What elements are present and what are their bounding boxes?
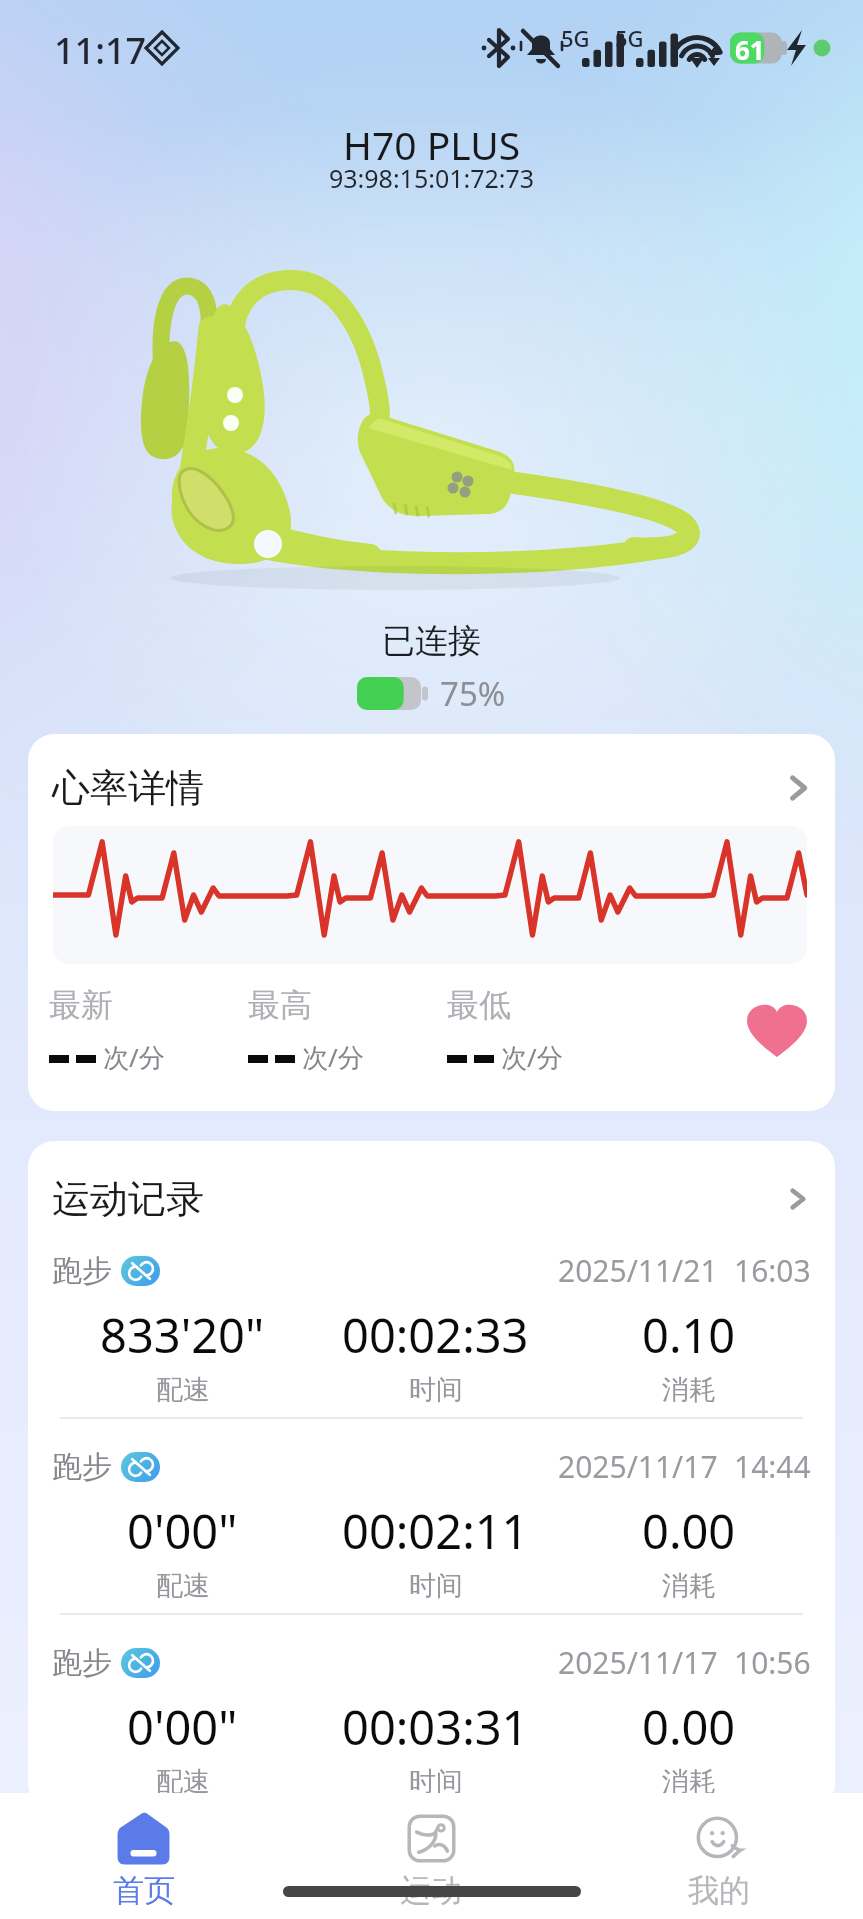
staticText: 配速: [156, 1765, 210, 1799]
staticText: 时间: [409, 1373, 463, 1407]
staticText: 00:03:31: [342, 1695, 529, 1759]
button[interactable]: Home: [0, 1793, 287, 1919]
staticText: 次/分: [103, 1039, 165, 1075]
button[interactable]: 心率详情: [28, 734, 835, 1111]
staticText: 消耗: [662, 1765, 716, 1799]
staticText: 0.00: [642, 1499, 736, 1563]
staticText: 14:44: [734, 1446, 811, 1487]
staticText: 时间: [409, 1569, 463, 1603]
staticText: 5G: [561, 23, 590, 53]
staticText: 最新: [49, 985, 113, 1025]
staticText: 我的: [688, 1871, 750, 1910]
staticText: 0'00": [127, 1499, 238, 1563]
button[interactable]: 跑步: [28, 1615, 835, 1809]
staticText: 运动: [400, 1871, 462, 1910]
staticText: 10:56: [734, 1642, 811, 1683]
staticText: 00:02:11: [342, 1499, 529, 1563]
staticText: 配速: [156, 1569, 210, 1603]
button[interactable]: Profile: [575, 1793, 863, 1919]
staticText: 75%: [440, 671, 506, 716]
button[interactable]: 运动记录: [52, 1175, 813, 1223]
staticText: 跑步: [52, 1644, 112, 1682]
staticText: 心率详情: [52, 764, 204, 812]
staticText: 最低: [447, 985, 511, 1025]
button[interactable]: 跑步: [28, 1419, 835, 1615]
staticText: 5G: [615, 23, 644, 53]
staticText: 2025/11/17: [558, 1446, 718, 1487]
staticText: 消耗: [662, 1373, 716, 1407]
staticText: 消耗: [662, 1569, 716, 1603]
button[interactable]: 跑步: [28, 1223, 835, 1419]
button[interactable]: Workout: [287, 1793, 575, 1919]
staticText: 61: [735, 32, 765, 67]
staticText: 运动记录: [52, 1175, 204, 1223]
staticText: 0.10: [642, 1303, 736, 1367]
staticText: 2025/11/17: [558, 1642, 718, 1683]
staticText: 0.00: [642, 1695, 736, 1759]
staticText: 833'20": [100, 1303, 265, 1367]
staticText: 00:02:33: [342, 1303, 529, 1367]
staticText: 首页: [113, 1871, 175, 1910]
staticText: 0'00": [127, 1695, 238, 1759]
staticText: 11:17: [54, 26, 147, 75]
staticText: 配速: [156, 1373, 210, 1407]
staticText: H70 PLUS: [343, 118, 521, 171]
staticText: 已连接: [382, 620, 481, 662]
staticText: 时间: [409, 1765, 463, 1799]
staticText: 跑步: [52, 1252, 112, 1290]
staticText: 跑步: [52, 1448, 112, 1486]
staticText: 93:98:15:01:72:73: [329, 161, 535, 195]
staticText: 次/分: [302, 1039, 364, 1075]
staticText: 最高: [248, 985, 312, 1025]
staticText: 2025/11/21: [558, 1250, 718, 1291]
staticText: 次/分: [501, 1039, 563, 1075]
staticText: 16:03: [734, 1250, 811, 1291]
